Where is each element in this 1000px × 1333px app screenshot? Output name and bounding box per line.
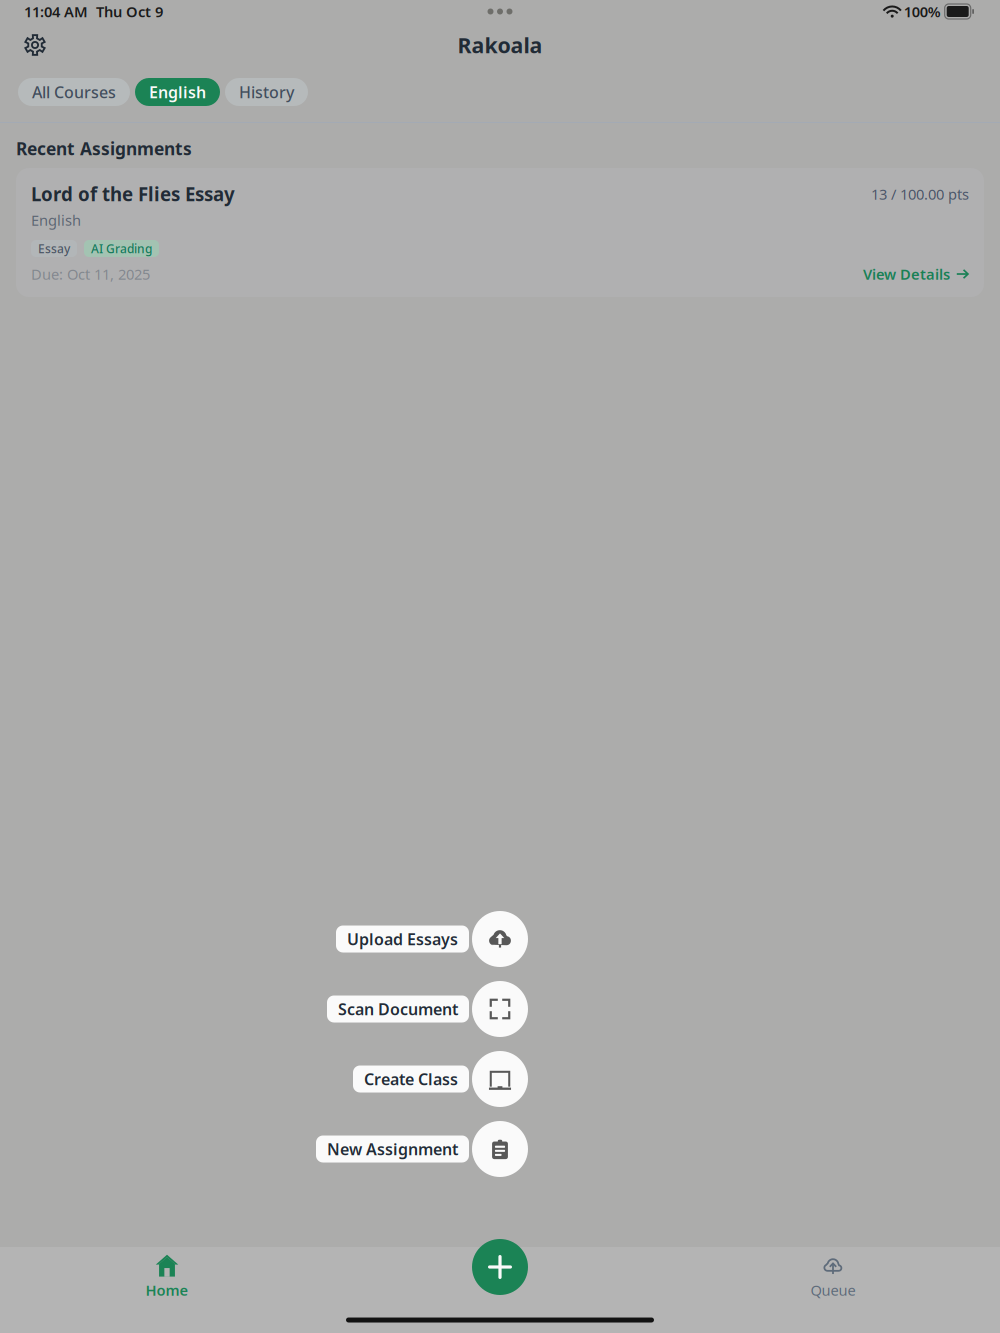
staticText: 13 / 100.00 pts — [871, 184, 969, 204]
button[interactable]: All Courses — [18, 78, 130, 106]
staticText: View Details — [863, 264, 950, 284]
button[interactable]: Create Class — [353, 1065, 469, 1092]
button[interactable]: New Assignment — [316, 1135, 469, 1162]
staticText: Home — [145, 1280, 188, 1300]
staticText: History — [239, 81, 294, 103]
staticText: Recent Assignments — [16, 137, 192, 160]
button[interactable]: History — [225, 78, 308, 106]
staticText: Due: Oct 11, 2025 — [31, 264, 150, 284]
staticText: Upload Essays — [347, 928, 458, 950]
button[interactable]: Scan Document — [327, 995, 469, 1022]
staticText: All Courses — [32, 81, 116, 103]
staticText: Thu Oct 9 — [88, 2, 163, 21]
staticText: 11:04 AM — [24, 2, 88, 21]
staticText: Create Class — [364, 1068, 458, 1090]
staticText: Lord of the Flies Essay — [31, 182, 235, 206]
staticText: English — [31, 210, 81, 230]
staticText: Rakoala — [457, 31, 542, 59]
button[interactable]: Lord of the Flies Essay — [16, 168, 984, 297]
button[interactable]: Upload Essays — [336, 925, 469, 952]
button[interactable]: English — [135, 78, 220, 106]
staticText: Scan Document — [338, 998, 458, 1020]
staticText: 100% — [900, 2, 945, 21]
staticText: AI Grading — [91, 240, 152, 256]
button[interactable]: New Assignment — [472, 1121, 528, 1177]
button[interactable]: Queue — [773, 1246, 893, 1308]
staticText: English — [149, 81, 206, 103]
button[interactable]: Settings — [24, 34, 46, 56]
button[interactable]: Scan Document — [472, 981, 528, 1037]
button[interactable]: Home — [107, 1246, 227, 1308]
staticText: Queue — [810, 1280, 855, 1300]
staticText: New Assignment — [327, 1138, 458, 1160]
button[interactable]: Create Class — [472, 1051, 528, 1107]
staticText: Essay — [38, 240, 70, 256]
button[interactable]: Add — [472, 1239, 528, 1295]
button[interactable]: Upload Essays — [472, 911, 528, 967]
